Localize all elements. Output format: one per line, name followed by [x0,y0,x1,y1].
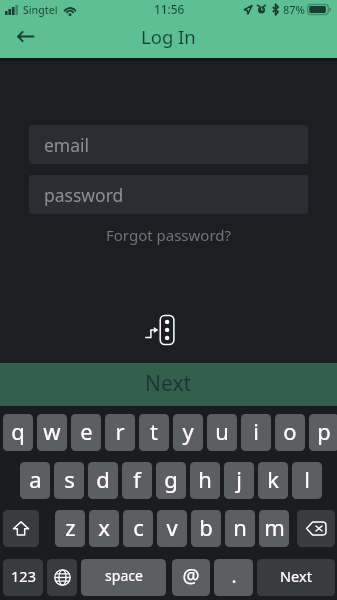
button[interactable]: a [20,462,50,499]
staticText: m [264,512,285,542]
button[interactable]: email [29,125,308,164]
button[interactable]: @ [172,559,210,596]
button[interactable]: s [54,462,84,499]
button[interactable]: 123 [3,559,43,596]
button[interactable]: t [139,414,169,451]
button[interactable]: l [292,462,322,499]
button[interactable]: Change keyboard [47,559,77,596]
staticText: f [133,464,141,494]
button[interactable]: password [29,175,308,214]
staticText: space [105,566,143,585]
staticText: i [253,416,259,446]
button[interactable]: Back [8,20,42,52]
staticText: Next [280,566,312,586]
staticText: j [236,464,242,494]
staticText: a [29,464,42,494]
button[interactable]: g [156,462,186,499]
staticText: h [198,464,212,494]
button[interactable]: Forgot password? [102,223,236,247]
button[interactable]: v [157,510,187,547]
staticText: @ [182,563,200,589]
staticText: d [96,464,110,494]
staticText: s [64,464,75,494]
staticText: password [44,183,124,207]
button[interactable]: h [190,462,220,499]
staticText: 123 [11,566,36,586]
staticText: Singtel [23,3,58,17]
button[interactable]: Next [257,559,335,596]
button[interactable]: z [55,510,85,547]
button[interactable]: u [207,414,237,451]
staticText: o [283,416,297,446]
button[interactable]: space [81,559,166,596]
button[interactable]: f [122,462,152,499]
staticText: q [11,416,25,446]
staticText: r [115,416,125,446]
staticText: v [166,512,178,542]
button[interactable]: n [225,510,255,547]
button[interactable]: c [123,510,153,547]
staticText: t [150,416,158,446]
button[interactable]: o [275,414,305,451]
button[interactable]: p [309,414,337,451]
button[interactable]: b [191,510,221,547]
button[interactable]: Next [0,363,337,406]
button[interactable]: x [89,510,119,547]
staticText: 11:56 [154,1,185,17]
staticText: w [43,416,61,446]
button[interactable]: r [105,414,135,451]
staticText: p [317,416,331,446]
staticText: u [215,416,229,446]
button[interactable]: e [71,414,101,451]
staticText: y [182,416,194,446]
button[interactable]: q [3,414,33,451]
staticText: g [164,464,178,494]
button[interactable]: Backspace [297,510,335,547]
staticText: c [133,512,144,542]
button[interactable]: d [88,462,118,499]
button[interactable]: j [224,462,254,499]
staticText: . [231,563,237,589]
button[interactable]: . [214,559,253,596]
button[interactable]: m [259,510,289,547]
staticText: l [304,464,310,494]
staticText: e [80,416,93,446]
staticText: k [267,464,279,494]
staticText: Next [145,369,192,398]
button[interactable]: k [258,462,288,499]
staticText: z [65,512,76,542]
button[interactable]: y [173,414,203,451]
button[interactable]: i [241,414,271,451]
button[interactable]: Shift [3,510,39,547]
button[interactable]: w [37,414,67,451]
staticText: Log In [141,24,196,49]
staticText: n [233,512,247,542]
staticText: email [44,133,90,157]
staticText: x [98,512,110,542]
staticText: 87% [283,2,305,17]
staticText: b [199,512,213,542]
